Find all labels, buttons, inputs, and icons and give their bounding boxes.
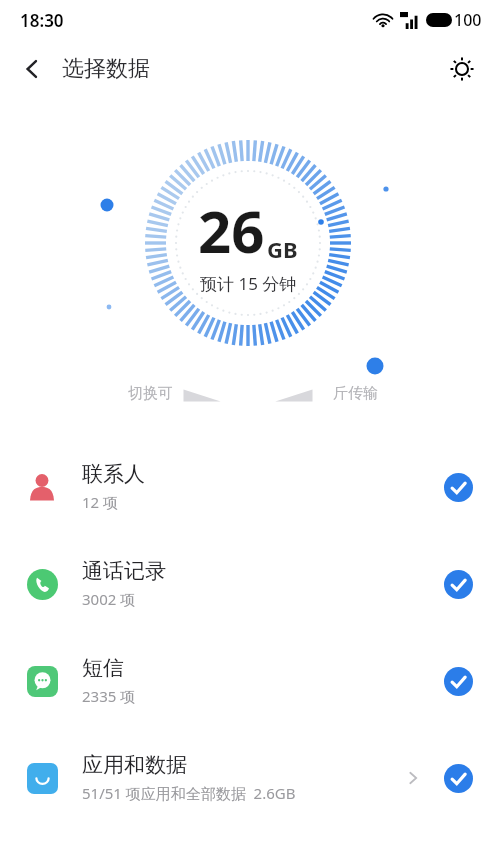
staticText: 选择数据 bbox=[62, 55, 150, 83]
staticText: GB bbox=[267, 234, 298, 264]
button[interactable]: Selected 应用和数据 bbox=[438, 758, 478, 798]
staticText: 联系人 bbox=[82, 461, 145, 487]
button[interactable]: 通话记录 bbox=[0, 535, 496, 632]
staticText: 预计 15 分钟 bbox=[200, 272, 297, 295]
staticText: 通话记录 bbox=[82, 558, 166, 584]
button[interactable]: 联系人 bbox=[0, 438, 496, 535]
button[interactable]: Selected 通话记录 bbox=[438, 564, 478, 604]
staticText: 斤传输 bbox=[333, 384, 378, 403]
button[interactable]: Back bbox=[8, 45, 56, 93]
staticText: 51/51 项应用和全部数据 2.6GB bbox=[82, 783, 296, 803]
staticText: 短信 bbox=[82, 655, 124, 681]
button[interactable]: Selected 联系人 bbox=[438, 467, 478, 507]
button[interactable]: 短信 bbox=[0, 632, 496, 729]
staticText: 18:30 bbox=[20, 9, 64, 32]
button[interactable]: Selected 短信 bbox=[438, 661, 478, 701]
staticText: 26 bbox=[198, 191, 265, 270]
staticText: 应用和数据 bbox=[82, 752, 187, 778]
staticText: 12 项 bbox=[82, 492, 119, 512]
staticText: 100 bbox=[454, 9, 482, 31]
staticText: 2335 项 bbox=[82, 686, 136, 706]
button[interactable]: More bbox=[396, 761, 430, 795]
button[interactable]: Brightness bbox=[438, 45, 486, 93]
staticText: 3002 项 bbox=[82, 589, 136, 609]
button[interactable]: 应用和数据 bbox=[0, 729, 496, 826]
staticText: 切换可 bbox=[128, 384, 173, 403]
